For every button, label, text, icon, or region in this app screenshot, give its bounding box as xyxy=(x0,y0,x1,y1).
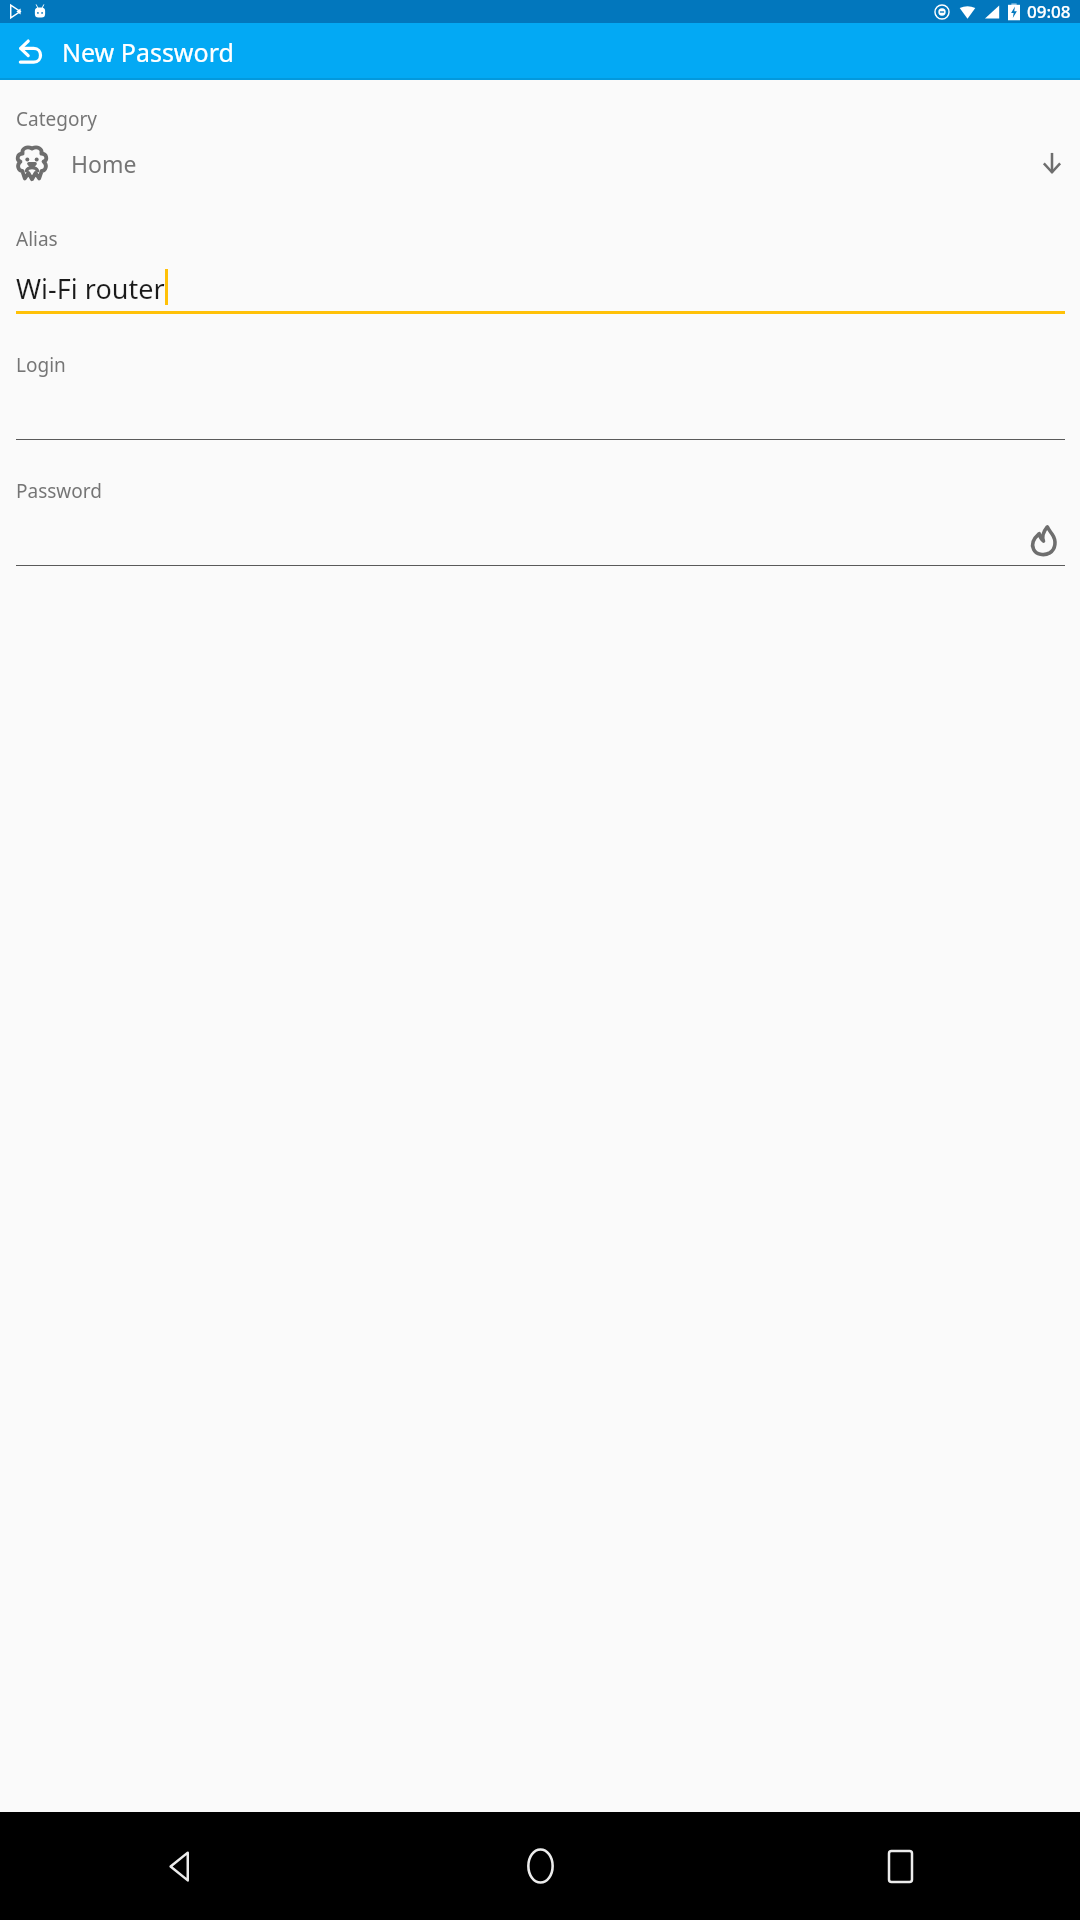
other: Expand category xyxy=(1032,143,1072,183)
button[interactable]: Home xyxy=(0,132,1080,194)
button[interactable]: Password xyxy=(0,478,1080,566)
staticText: Password xyxy=(16,478,102,504)
button[interactable]: Back xyxy=(0,1812,360,1920)
button[interactable]: Back xyxy=(10,31,52,73)
button[interactable]: Recent apps xyxy=(720,1812,1080,1920)
button[interactable]: Alias xyxy=(0,226,1080,314)
staticText: Alias xyxy=(16,226,58,252)
button[interactable]: Login xyxy=(0,352,1080,440)
staticText: Home xyxy=(71,148,137,179)
staticText: 09:08 xyxy=(1027,0,1071,23)
staticText: New Password xyxy=(62,35,234,69)
staticText: Login xyxy=(16,352,66,378)
staticText: Wi-Fi router xyxy=(16,270,165,307)
button[interactable]: Home xyxy=(360,1812,720,1920)
button[interactable]: Generate password xyxy=(1021,518,1065,562)
staticText: Category xyxy=(16,106,97,132)
